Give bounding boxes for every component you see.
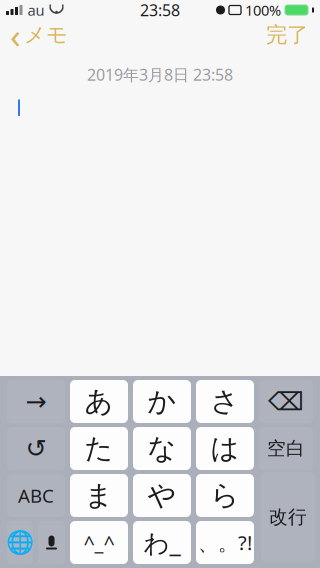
button[interactable]: た <box>70 427 128 470</box>
button[interactable]: 完了 <box>254 20 320 50</box>
button[interactable]: ⌫ <box>259 380 313 423</box>
button[interactable]: → <box>7 380 65 423</box>
button[interactable]: Switch keyboard <box>7 521 33 564</box>
staticText: → <box>25 387 46 416</box>
staticText: 、。?! <box>198 529 252 556</box>
button[interactable]: わ_ <box>133 521 191 564</box>
staticText: ‹ <box>10 12 21 58</box>
button[interactable]: Dictation <box>38 521 65 564</box>
button[interactable]: 、。?! <box>196 521 254 564</box>
staticText: や <box>147 478 176 513</box>
staticText: 完了 <box>266 22 308 48</box>
staticText: ⌫ <box>268 387 304 416</box>
button[interactable]: 空白 <box>259 427 313 470</box>
staticText: 100% <box>245 0 281 20</box>
button[interactable]: か <box>133 380 191 423</box>
staticText: ABC <box>18 483 54 508</box>
staticText: た <box>84 431 113 466</box>
staticText: ま <box>84 478 113 513</box>
button[interactable]: ‹ <box>0 20 78 50</box>
staticText: 改行 <box>269 505 307 528</box>
staticText: わ_ <box>143 526 180 559</box>
button[interactable]: な <box>133 427 191 470</box>
button[interactable]: ら <box>196 474 254 517</box>
button[interactable]: や <box>133 474 191 517</box>
staticText: あ <box>84 384 113 419</box>
button[interactable]: 改行 <box>261 472 315 562</box>
staticText: メモ <box>24 22 68 48</box>
button[interactable]: は <box>196 427 254 470</box>
staticText: 23:58 <box>140 0 180 21</box>
button[interactable]: ^_^ <box>70 521 128 564</box>
staticText: ら <box>210 478 239 513</box>
button[interactable]: あ <box>70 380 128 423</box>
staticText: au <box>27 0 44 20</box>
staticText: 2019年3月8日 23:58 <box>87 64 233 85</box>
button[interactable]: ↺ <box>7 427 65 470</box>
staticText: 🌐 <box>6 530 34 555</box>
staticText: は <box>210 431 239 466</box>
button[interactable]: ま <box>70 474 128 517</box>
staticText: 空白 <box>267 437 305 460</box>
button[interactable]: ABC <box>7 474 65 517</box>
staticText: か <box>147 384 176 419</box>
staticText: ↺ <box>25 434 46 463</box>
staticText: さ <box>210 384 239 419</box>
staticText: ^_^ <box>83 529 114 556</box>
button[interactable]: さ <box>196 380 254 423</box>
staticText: な <box>147 431 176 466</box>
